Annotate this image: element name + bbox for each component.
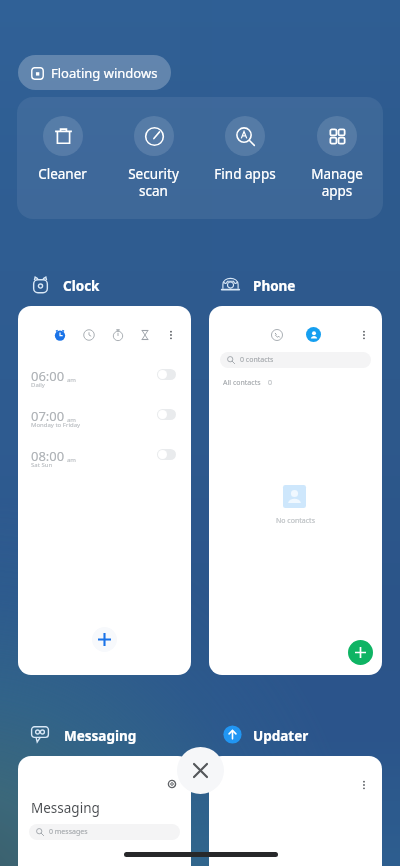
button[interactable]: Contacts tab [306,327,321,342]
button[interactable]: Updater [209,726,309,746]
staticText: Cleaner [38,165,87,183]
button[interactable]: Tab [209,306,382,675]
button[interactable]: Tab [54,329,66,341]
button[interactable]: Tab [139,329,151,341]
staticText: 0 contacts [240,355,274,365]
button[interactable]: Messaging [18,726,137,746]
staticText: No contacts [276,516,315,526]
staticText: Messaging [64,727,137,745]
staticText: am [67,416,76,424]
button[interactable]: More options [358,329,370,341]
button[interactable]: Tab [83,329,95,341]
button[interactable]: Tab [271,329,283,341]
staticText: 07:00 [31,407,65,425]
staticText: 0 messages [49,827,88,837]
button[interactable]: Manage apps [291,97,383,219]
staticText: Manage apps [311,165,363,200]
button[interactable]: Add alarm [92,627,117,652]
button[interactable]: More options [358,779,370,791]
staticText: am [67,456,76,464]
staticText: Messaging [31,799,100,817]
button[interactable]: 07:00 [18,407,191,441]
staticText: 06:00 [31,367,65,385]
staticText: 08:00 [31,447,65,465]
button[interactable]: Cleaner [17,97,108,219]
button[interactable]: Alarm toggle [157,449,176,460]
button[interactable]: 0 messages [29,824,180,840]
staticText: Monday to Friday [31,421,81,429]
button[interactable]: Alarm toggle [157,409,176,420]
staticText: Find apps [214,165,276,183]
button[interactable]: 08:00 [18,447,191,481]
staticText: Security scan [128,165,179,200]
staticText: Phone [253,277,296,295]
staticText: Daily [31,381,45,389]
staticText: Sat Sun [31,461,53,469]
button[interactable]: Close all [177,747,224,794]
button[interactable]: 06:00 [18,367,191,401]
staticText: All contacts [223,378,261,388]
button[interactable]: Tab [112,329,124,341]
button[interactable]: Clock [18,276,100,296]
staticText: Floating windows [51,64,158,82]
staticText: am [67,376,76,384]
button[interactable]: Messaging [18,756,191,866]
staticText: Clock [63,277,100,295]
button[interactable]: 0 contacts [220,352,371,368]
button[interactable]: More options [209,756,382,866]
button[interactable]: Security scan [108,97,199,219]
button[interactable]: Find apps [199,97,291,219]
button[interactable]: Phone [209,276,296,296]
button[interactable]: More options [165,329,177,341]
button[interactable]: Add contact [348,640,373,665]
button[interactable]: Alarm toggle [157,369,176,380]
staticText: Updater [253,727,309,745]
staticText: 0 [268,378,273,388]
button[interactable]: Tab [18,306,191,675]
button[interactable]: Floating windows [18,55,171,90]
